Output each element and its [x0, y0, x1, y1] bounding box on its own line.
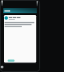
button[interactable]	[4, 15, 36, 22]
button[interactable]	[7, 59, 15, 63]
button[interactable]	[2, 8, 38, 13]
